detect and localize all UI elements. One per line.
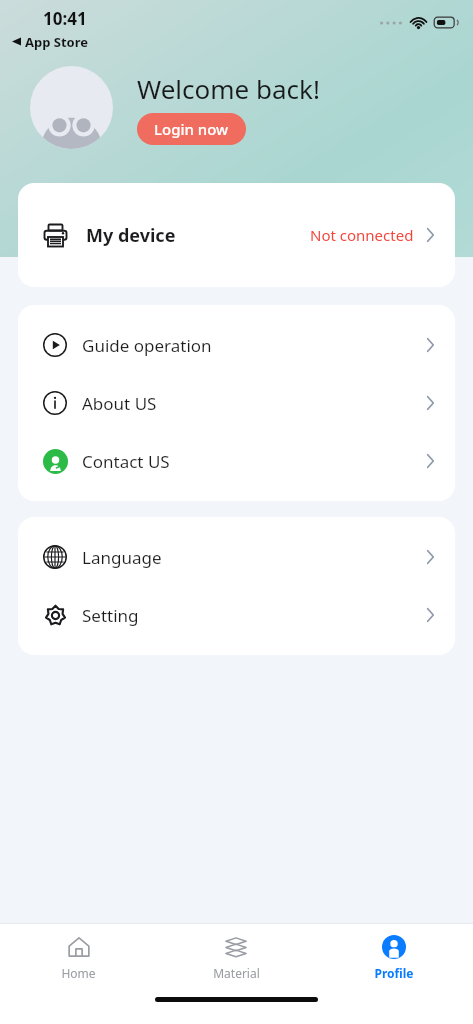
staticText: Setting	[82, 604, 139, 627]
staticText: Home	[61, 965, 96, 981]
button[interactable]: Home	[0, 924, 157, 990]
button[interactable]: My device	[18, 194, 455, 276]
staticText: Contact US	[82, 450, 170, 473]
button[interactable]: Profile	[315, 924, 473, 990]
button[interactable]: Contact US	[18, 432, 455, 490]
staticText: Language	[82, 546, 162, 569]
staticText: Profile	[374, 965, 414, 981]
staticText: Guide operation	[82, 334, 212, 357]
button[interactable]: Profile picture	[30, 66, 113, 149]
staticText: Welcome back!	[137, 71, 320, 106]
staticText: App Store	[25, 33, 89, 50]
button[interactable]: Material	[157, 924, 315, 990]
button[interactable]: Language	[18, 528, 455, 586]
button[interactable]: About US	[18, 374, 455, 432]
staticText: My device	[86, 223, 176, 248]
button[interactable]: Guide operation	[18, 316, 455, 374]
staticText: Material	[213, 965, 260, 981]
button[interactable]: Login now	[137, 113, 246, 145]
staticText: Not connected	[310, 225, 414, 245]
staticText: About US	[82, 392, 157, 415]
button[interactable]: Setting	[18, 586, 455, 644]
staticText: Login now	[154, 119, 229, 139]
staticText: 10:41	[43, 7, 87, 30]
